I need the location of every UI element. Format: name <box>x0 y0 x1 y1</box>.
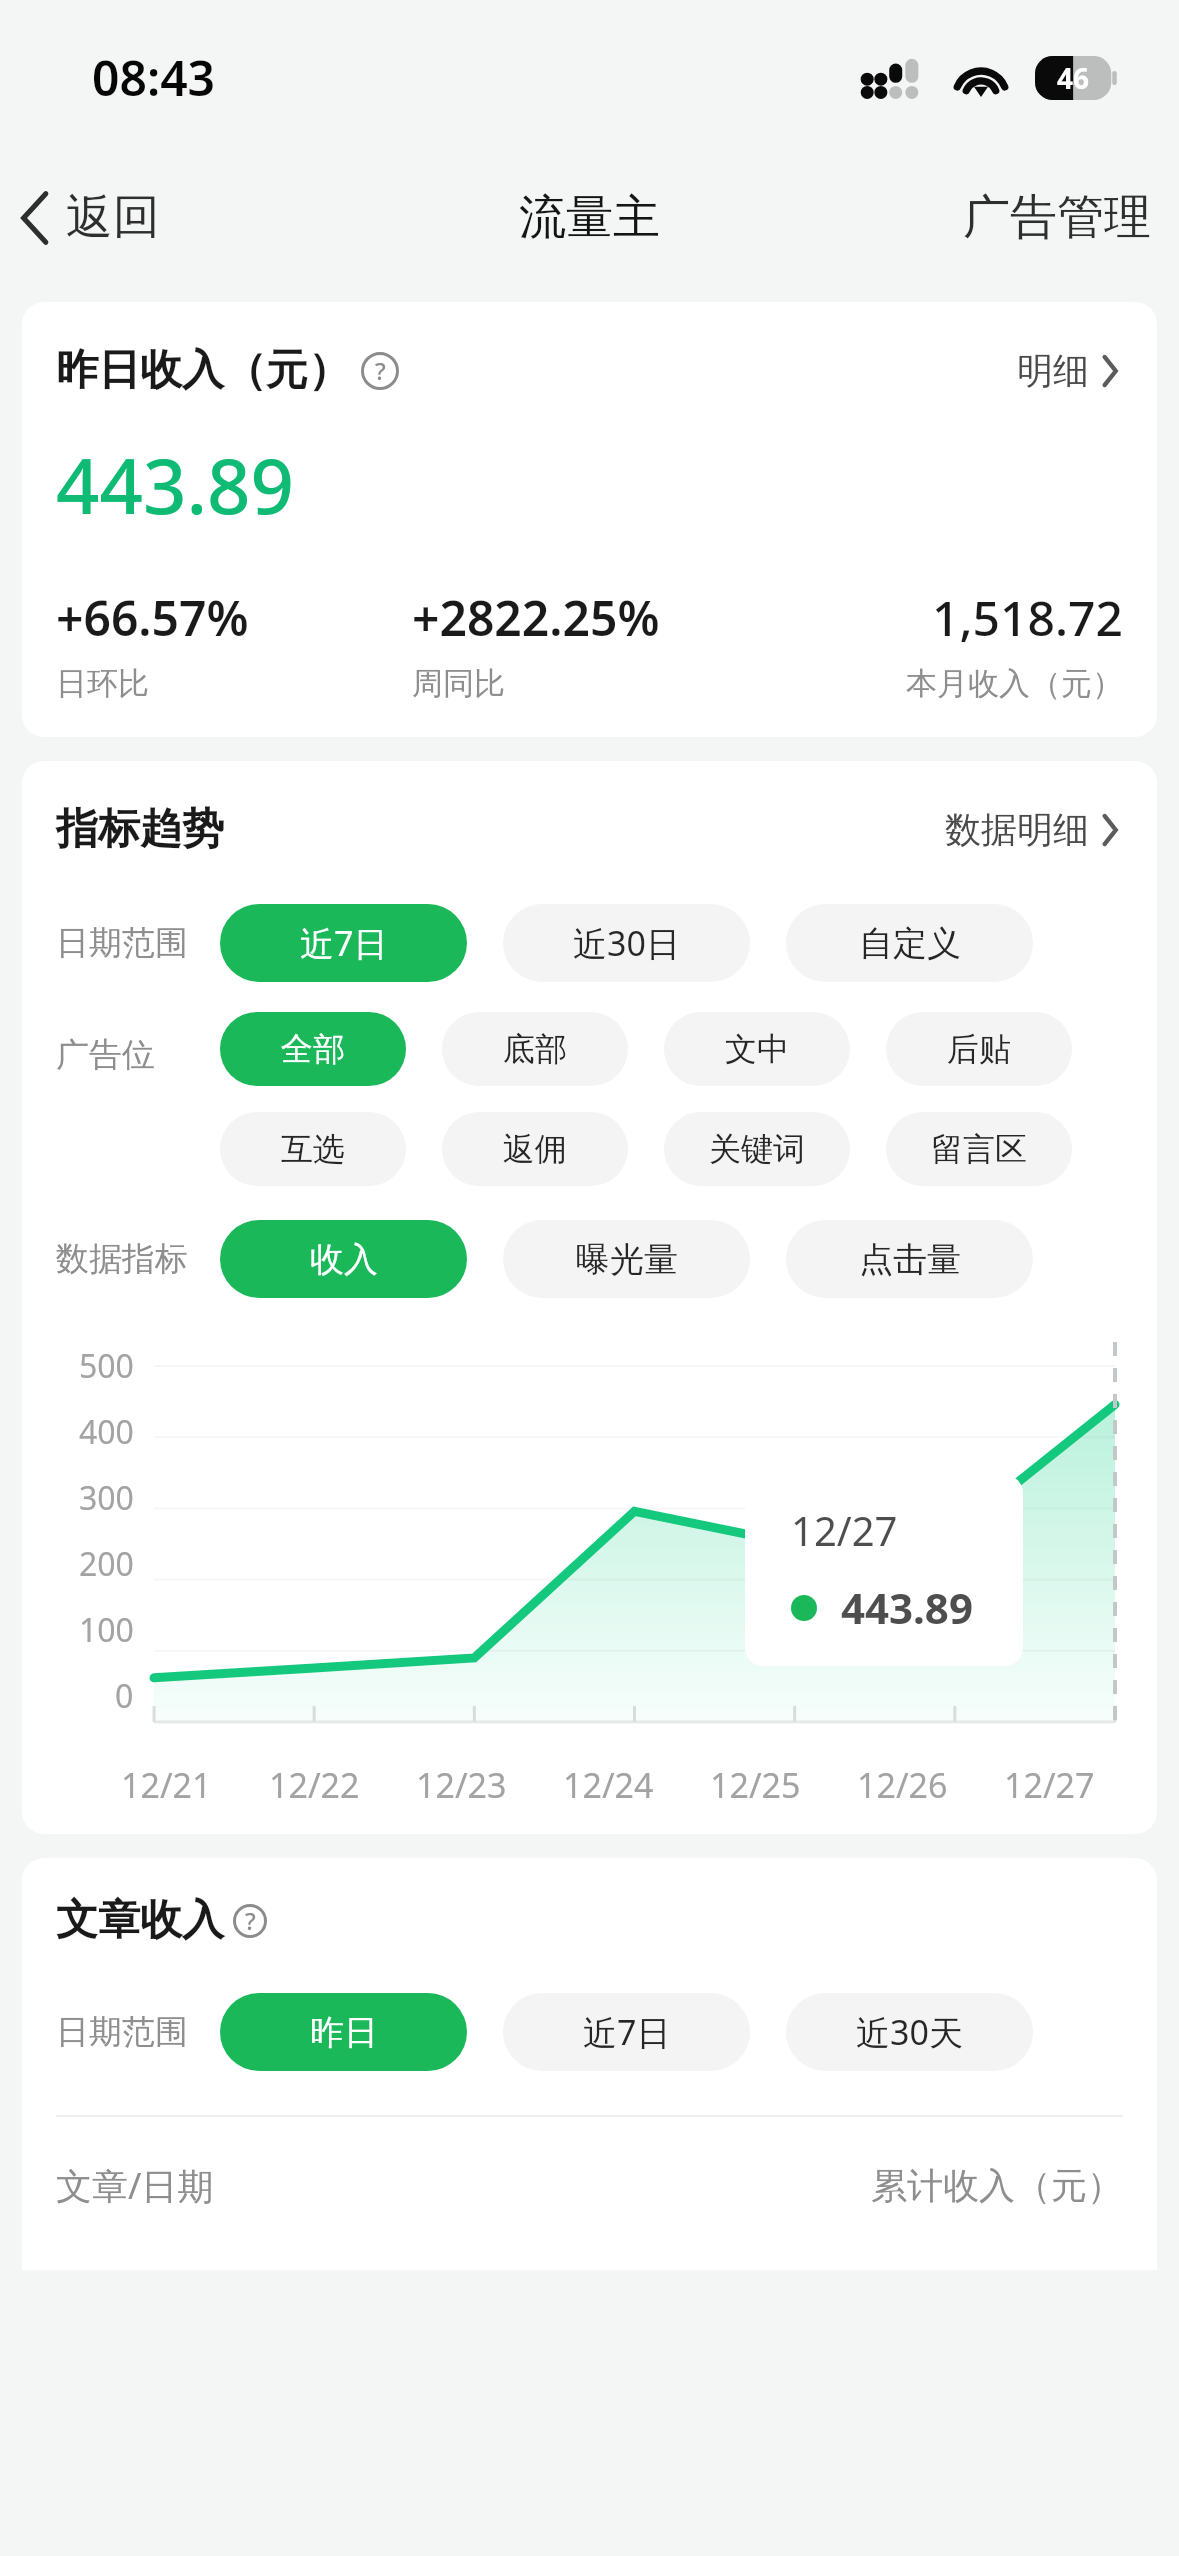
staticText: 数据明细 <box>945 807 1089 852</box>
staticText: 443.89 <box>56 433 295 537</box>
staticText: 12/24 <box>563 1762 654 1808</box>
button[interactable]: 文中 <box>664 1012 850 1086</box>
staticText: 返佣 <box>503 1129 567 1169</box>
staticText: 12/25 <box>710 1762 801 1808</box>
staticText: 后贴 <box>947 1029 1011 1069</box>
staticText: 443.89 <box>841 1579 973 1636</box>
staticText: 底部 <box>503 1029 567 1069</box>
button[interactable]: 近30日 <box>503 904 750 982</box>
staticText: 关键词 <box>709 1129 805 1169</box>
staticText: 200 <box>79 1542 134 1586</box>
staticText: 100 <box>79 1608 134 1652</box>
staticText: 收入 <box>310 1238 378 1281</box>
staticText: 文章收入 <box>56 1894 224 1947</box>
staticText: 日期范围 <box>56 922 196 964</box>
staticText: 1,518.72 <box>932 585 1123 650</box>
staticText: 曝光量 <box>576 1238 678 1281</box>
button[interactable]: 说明 <box>228 1899 272 1943</box>
staticText: ? <box>245 1904 256 1937</box>
button[interactable]: 返回 <box>0 170 184 265</box>
staticText: 点击量 <box>859 1238 961 1281</box>
button[interactable]: 全部 <box>220 1012 406 1086</box>
staticText: 昨日收入（元） <box>56 344 350 397</box>
staticText: 近7日 <box>583 2009 671 2055</box>
button[interactable]: 曝光量 <box>503 1220 750 1298</box>
staticText: 0 <box>115 1674 134 1718</box>
staticText: +66.57% <box>56 585 249 650</box>
staticText: ? <box>375 354 386 387</box>
staticText: 互选 <box>281 1129 345 1169</box>
staticText: 文章/日期 <box>56 2161 214 2210</box>
button[interactable]: 广告管理 <box>935 170 1179 265</box>
button[interactable]: 返佣 <box>442 1112 628 1186</box>
staticText: 指标趋势 <box>56 803 224 856</box>
button[interactable]: 近7日 <box>220 904 467 982</box>
button[interactable]: 说明 <box>358 349 402 393</box>
staticText: 昨日 <box>310 2011 378 2054</box>
staticText: 近30日 <box>573 920 680 966</box>
staticText: 300 <box>79 1476 134 1520</box>
button[interactable]: 关键词 <box>664 1112 850 1186</box>
staticText: 留言区 <box>931 1129 1027 1169</box>
staticText: 12/23 <box>416 1762 507 1808</box>
staticText: 近7日 <box>300 920 388 966</box>
staticText: 400 <box>79 1410 134 1454</box>
staticText: 自定义 <box>859 922 961 965</box>
button[interactable]: 收入 <box>220 1220 467 1298</box>
staticText: 12/27 <box>1004 1762 1095 1808</box>
staticText: 文中 <box>725 1029 789 1069</box>
staticText: 累计收入（元） <box>871 2163 1123 2208</box>
button[interactable]: 明细 <box>1013 338 1123 403</box>
staticText: 返回 <box>66 188 160 247</box>
staticText: 流量主 <box>519 188 660 247</box>
staticText: +2822.25% <box>412 585 660 650</box>
button[interactable]: 互选 <box>220 1112 406 1186</box>
staticText: 广告位 <box>56 1034 196 1076</box>
button[interactable]: 近30天 <box>786 1993 1033 2071</box>
staticText: 500 <box>79 1344 134 1388</box>
button[interactable]: 自定义 <box>786 904 1033 982</box>
staticText: 周同比 <box>412 664 505 703</box>
staticText: 12/22 <box>269 1762 360 1808</box>
staticText: 近30天 <box>856 2009 963 2055</box>
staticText: 12/27 <box>791 1503 898 1557</box>
staticText: 全部 <box>281 1029 345 1069</box>
staticText: 46 <box>1057 59 1090 97</box>
button[interactable]: 后贴 <box>886 1012 1072 1086</box>
button[interactable]: 近7日 <box>503 1993 750 2071</box>
button[interactable]: 底部 <box>442 1012 628 1086</box>
staticText: 日环比 <box>56 664 149 703</box>
staticText: 12/26 <box>857 1762 948 1808</box>
staticText: 08:43 <box>92 45 216 110</box>
staticText: 明细 <box>1017 348 1089 393</box>
button[interactable]: 留言区 <box>886 1112 1072 1186</box>
staticText: 日期范围 <box>56 2011 196 2053</box>
button[interactable]: 数据明细 <box>941 797 1123 862</box>
staticText: 12/21 <box>121 1762 212 1808</box>
staticText: 数据指标 <box>56 1238 196 1280</box>
button[interactable]: 点击量 <box>786 1220 1033 1298</box>
button[interactable]: 昨日 <box>220 1993 467 2071</box>
staticText: 本月收入（元） <box>906 664 1123 703</box>
